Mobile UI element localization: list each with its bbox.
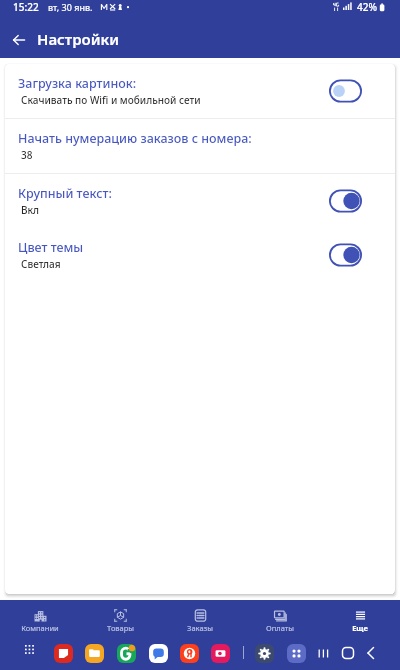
- button[interactable]: Товары: [80, 604, 160, 633]
- staticText: Компании: [21, 623, 59, 633]
- button[interactable]: Recents: [311, 641, 335, 665]
- button[interactable]: Крупный текст:: [5, 174, 395, 228]
- button[interactable]: Back: [359, 641, 383, 665]
- button[interactable]: App: [211, 644, 230, 663]
- button[interactable]: App: [117, 644, 136, 663]
- staticText: Загрузка картинок:: [18, 75, 137, 92]
- staticText: Настройки: [37, 29, 120, 49]
- button[interactable]: App drawer: [19, 639, 39, 659]
- button[interactable]: Заказы: [160, 604, 240, 633]
- button[interactable]: Еще: [320, 604, 400, 633]
- button[interactable]: Home: [336, 641, 360, 665]
- staticText: 38: [21, 148, 33, 162]
- button[interactable]: App: [149, 644, 168, 663]
- staticText: вт, 30 янв.: [48, 1, 93, 13]
- button[interactable]: Toggle on: [329, 188, 362, 214]
- button[interactable]: Back: [0, 21, 37, 58]
- staticText: 42%: [357, 0, 377, 14]
- button[interactable]: Цвет темы: [5, 228, 395, 282]
- staticText: Цвет темы: [18, 239, 84, 256]
- button[interactable]: App: [255, 644, 274, 663]
- button[interactable]: Загрузка картинок:: [5, 64, 395, 118]
- button[interactable]: Оплаты: [240, 604, 320, 633]
- staticText: Крупный текст:: [18, 185, 112, 202]
- button[interactable]: App: [85, 644, 104, 663]
- staticText: Оплаты: [266, 623, 294, 633]
- button[interactable]: App: [287, 644, 306, 663]
- staticText: Товары: [107, 623, 134, 633]
- staticText: Заказы: [187, 623, 213, 633]
- button[interactable]: Компании: [0, 604, 80, 633]
- staticText: Начать нумерацию заказов с номера:: [18, 130, 252, 147]
- staticText: 15:22: [13, 0, 39, 14]
- button[interactable]: Начать нумерацию заказов с номера:: [5, 119, 395, 173]
- staticText: Вкл: [21, 203, 40, 217]
- staticText: Скачивать по Wifi и мобильной сети: [21, 93, 201, 107]
- staticText: Еще: [352, 623, 368, 633]
- button[interactable]: Toggle on: [329, 242, 362, 268]
- staticText: Светлая: [21, 257, 61, 271]
- button[interactable]: Toggle off: [329, 78, 362, 104]
- button[interactable]: App: [54, 644, 73, 663]
- button[interactable]: App: [180, 644, 199, 663]
